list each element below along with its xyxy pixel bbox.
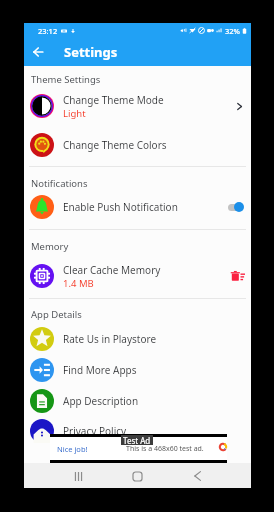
button[interactable]: App Description: [24, 387, 251, 415]
staticText: Rate Us in Playstore: [63, 332, 157, 346]
button[interactable]: Find More Apps: [24, 356, 251, 384]
staticText: Find More Apps: [63, 363, 137, 377]
button[interactable]: Privacy Policy: [24, 417, 251, 445]
staticText: 32%: [225, 26, 240, 36]
staticText: Test Ad: [123, 435, 151, 445]
button[interactable]: Rate Us in Playstore: [24, 325, 251, 353]
button[interactable]: Change Theme Mode: [24, 92, 251, 120]
button[interactable]: Change Theme Colors: [24, 131, 251, 159]
staticText: App Description: [63, 394, 139, 408]
button[interactable]: Enable Push Notification: [24, 193, 251, 221]
button[interactable]: Clear Cache Memory: [24, 262, 251, 290]
staticText: Light: [63, 107, 86, 120]
button[interactable]: Recent apps: [68, 466, 88, 486]
button[interactable]: Back: [187, 466, 207, 486]
staticText: Change Theme Colors: [63, 138, 167, 152]
staticText: Change Theme Mode: [63, 93, 164, 107]
staticText: Privacy Policy: [63, 424, 127, 438]
staticText: Clear Cache Memory: [63, 263, 161, 277]
staticText: This is a 468x60 test ad.: [126, 444, 204, 454]
staticText: Settings: [64, 43, 118, 61]
button[interactable]: Back: [24, 38, 52, 66]
staticText: Nice job!: [57, 444, 88, 454]
staticText: 23:12: [38, 26, 58, 36]
staticText: App Details: [31, 308, 82, 321]
staticText: Notifications: [31, 177, 88, 190]
staticText: Theme Settings: [31, 73, 101, 86]
staticText: Memory: [31, 240, 69, 253]
button[interactable]: Home: [127, 466, 147, 486]
staticText: 1.4 MB: [63, 277, 94, 290]
staticText: Enable Push Notification: [63, 200, 178, 214]
